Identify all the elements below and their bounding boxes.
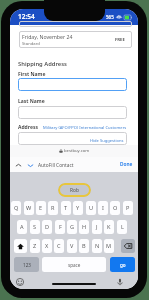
staticText: Last Name xyxy=(18,98,45,105)
staticText: 565 xyxy=(106,14,114,20)
button[interactable]: Hide Suggestions xyxy=(90,138,124,144)
staticText: A xyxy=(20,223,24,231)
button[interactable]: J xyxy=(92,220,102,234)
staticText: S xyxy=(33,223,37,231)
button[interactable]: F xyxy=(55,220,65,234)
staticText: 123 xyxy=(23,262,31,268)
button[interactable]: G xyxy=(67,220,77,234)
staticText: R xyxy=(51,204,55,212)
staticText: Address xyxy=(18,124,38,131)
staticText: First Name xyxy=(18,71,46,78)
button[interactable]: go xyxy=(110,257,135,272)
button[interactable]: V xyxy=(67,239,77,253)
staticText: Q xyxy=(14,204,19,212)
button[interactable]: R xyxy=(48,201,58,215)
staticText: F xyxy=(59,223,62,231)
button[interactable]: X xyxy=(42,239,52,253)
staticText: P xyxy=(126,204,130,212)
button[interactable]: Q xyxy=(11,201,21,215)
staticText: AutoFill Contact xyxy=(38,162,74,169)
staticText: D xyxy=(45,223,50,231)
staticText: K xyxy=(107,223,111,231)
staticText: J xyxy=(96,223,98,231)
button[interactable]: P xyxy=(123,201,133,215)
button[interactable] xyxy=(18,78,127,91)
button[interactable]: Rob xyxy=(58,183,91,197)
staticText: E xyxy=(39,204,43,212)
staticText: Standard xyxy=(22,41,40,47)
button[interactable]: L xyxy=(117,220,127,234)
button[interactable]: A xyxy=(17,220,27,234)
button[interactable]: N xyxy=(92,239,102,253)
staticText: V xyxy=(70,242,74,250)
staticText: H xyxy=(82,223,87,231)
staticText: U xyxy=(89,204,94,212)
button[interactable]: B xyxy=(79,239,89,253)
staticText: bestbuy.com xyxy=(64,148,90,154)
staticText: T xyxy=(64,204,68,212)
button[interactable]: E xyxy=(36,201,46,215)
button[interactable] xyxy=(18,106,127,119)
button[interactable]: Y xyxy=(73,201,83,215)
button[interactable]: K xyxy=(104,220,114,234)
button[interactable]: Next field xyxy=(25,160,35,170)
staticText: G xyxy=(70,223,75,231)
staticText: B xyxy=(82,242,86,250)
button[interactable]: W xyxy=(24,201,34,215)
button[interactable]: Done xyxy=(120,161,133,168)
button[interactable]: Emoji keyboard xyxy=(14,276,25,287)
button[interactable]: Hide Suggestions xyxy=(18,132,127,145)
button[interactable]: C xyxy=(54,239,64,253)
staticText: X xyxy=(45,242,49,250)
button[interactable]: Friday, November 24 xyxy=(19,31,132,48)
button[interactable]: AutoFill Contact xyxy=(38,162,74,169)
staticText: Friday, November 24 xyxy=(22,33,73,40)
staticText: Done xyxy=(120,161,133,168)
staticText: C xyxy=(57,242,61,250)
staticText: Military (AFO/FPO) International Custome… xyxy=(43,125,127,131)
button[interactable]: 123 xyxy=(14,257,39,272)
button[interactable]: U xyxy=(86,201,96,215)
button[interactable]: O xyxy=(110,201,120,215)
staticText: 12:54 xyxy=(18,12,35,21)
button[interactable]: Backspace xyxy=(121,239,135,253)
staticText: M xyxy=(106,242,112,250)
staticText: Hide Suggestions xyxy=(90,138,124,144)
staticText: L xyxy=(121,223,124,231)
button[interactable]: Z xyxy=(30,239,40,253)
button[interactable]: Dictation xyxy=(114,276,125,287)
staticText: Y xyxy=(76,204,80,212)
staticText: W xyxy=(26,204,32,212)
staticText: FREE xyxy=(115,37,125,43)
button[interactable]: space xyxy=(42,257,106,272)
button[interactable]: Shift xyxy=(14,239,27,253)
button[interactable]: H xyxy=(79,220,89,234)
staticText: Z xyxy=(33,242,37,250)
button[interactable]: S xyxy=(30,220,40,234)
button[interactable]: D xyxy=(42,220,52,234)
staticText: go xyxy=(120,262,126,268)
staticText: I xyxy=(102,204,104,212)
staticText: Shipping Address xyxy=(18,60,67,68)
button[interactable]: I xyxy=(98,201,108,215)
button[interactable]: M xyxy=(104,239,114,253)
staticText: space xyxy=(68,262,81,268)
button[interactable]: Previous field xyxy=(13,160,23,170)
staticText: Rob xyxy=(70,187,79,194)
button[interactable]: Military (AFO/FPO) International Custome… xyxy=(43,125,127,131)
button[interactable]: T xyxy=(61,201,71,215)
staticText: O xyxy=(113,204,118,212)
staticText: N xyxy=(95,242,100,250)
